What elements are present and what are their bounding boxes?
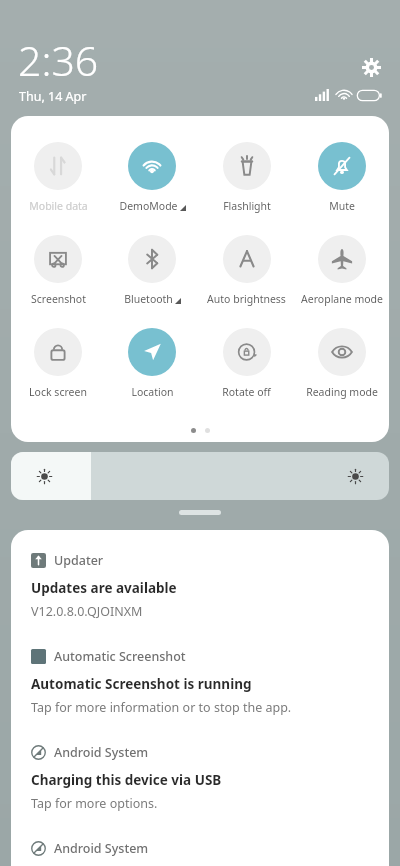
staticText: Reading mode (306, 385, 378, 399)
staticText: Tap for more options. (31, 795, 158, 812)
staticText: Automatic Screenshot (54, 648, 186, 665)
button[interactable]: Aeroplane mode (294, 231, 389, 310)
button[interactable]: DemoMode (105, 138, 199, 217)
staticText: V12.0.8.0.QJOINXM (31, 603, 143, 620)
staticText: Thu, 14 Apr (19, 88, 87, 105)
staticText: Lock screen (29, 385, 87, 399)
button[interactable]: Location (105, 324, 199, 403)
staticText: DemoMode (119, 199, 178, 213)
staticText: Bluetooth (124, 292, 173, 306)
staticText: Auto brightness (207, 292, 286, 306)
button[interactable]: Automatic Screenshot (31, 648, 371, 716)
button[interactable]: Mute (294, 138, 389, 217)
button[interactable]: Auto brightness (199, 231, 294, 310)
staticText: Screenshot (31, 292, 86, 306)
staticText: Automatic Screenshot is running (31, 675, 252, 693)
staticText: Android System (54, 744, 149, 761)
staticText: 2:36 (18, 32, 99, 88)
button[interactable]: Bluetooth (105, 231, 199, 310)
button[interactable]: Flashlight (199, 138, 294, 217)
button[interactable]: Brightness (11, 452, 389, 500)
button[interactable]: Rotate off (199, 324, 294, 403)
staticText: Tap for more information or to stop the … (31, 699, 292, 716)
button[interactable]: Screenshot (11, 231, 105, 310)
staticText: Android System (54, 840, 149, 857)
staticText: Charging this device via USB (31, 771, 222, 789)
staticText: Mobile data (29, 199, 88, 213)
staticText: Updater (54, 552, 104, 569)
staticText: Rotate off (222, 385, 271, 399)
button[interactable]: Lock screen (11, 324, 105, 403)
button[interactable]: Reading mode (294, 324, 389, 403)
staticText: Location (131, 385, 174, 399)
button[interactable]: Android System (31, 744, 371, 812)
button[interactable]: Updater (31, 552, 371, 620)
staticText: Aeroplane mode (301, 292, 383, 306)
staticText: Updates are available (31, 579, 177, 597)
staticText: Mute (329, 199, 355, 213)
staticText: Flashlight (223, 199, 271, 213)
button[interactable]: Settings (356, 52, 386, 82)
button[interactable]: Android System (31, 840, 371, 857)
button[interactable]: Mobile data (11, 138, 105, 217)
